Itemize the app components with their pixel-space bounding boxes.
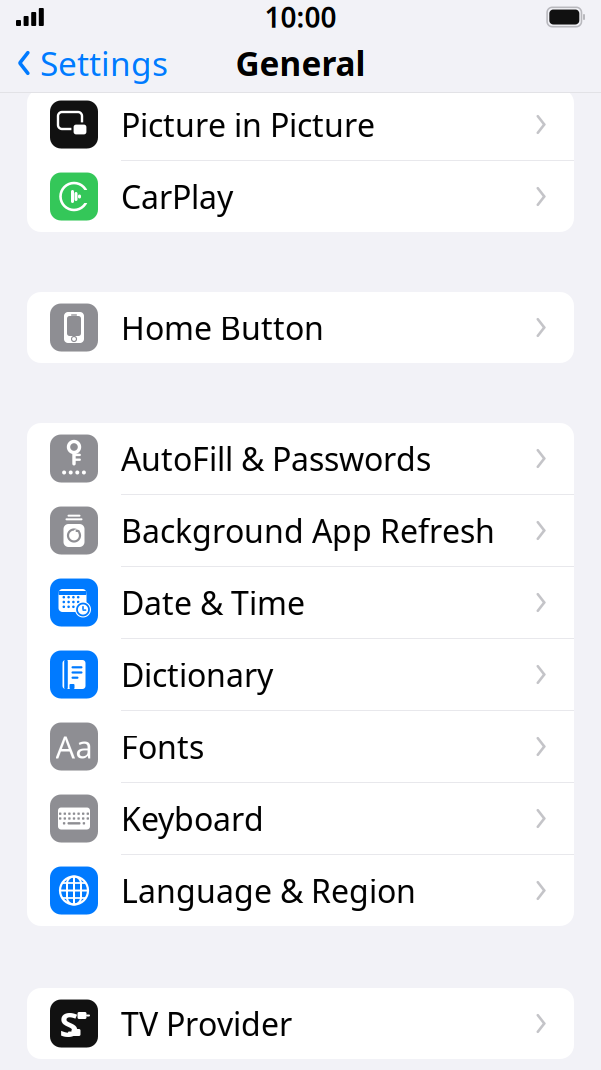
staticText: AutoFill & Passwords: [121, 437, 431, 480]
staticText: Dictionary: [121, 653, 273, 696]
staticText: Fonts: [121, 725, 204, 768]
button[interactable]: AutoFill & Passwords: [27, 423, 574, 495]
button[interactable]: Picture in Picture: [27, 89, 574, 161]
staticText: Language & Region: [121, 869, 416, 912]
staticText: Home Button: [121, 306, 324, 349]
button[interactable]: Keyboard: [27, 783, 574, 855]
staticText: Settings: [40, 41, 168, 85]
staticText: General: [235, 41, 365, 85]
button[interactable]: Dictionary: [27, 639, 574, 711]
staticText: CarPlay: [121, 175, 233, 218]
button[interactable]: S: [27, 988, 574, 1059]
staticText: Background App Refresh: [121, 509, 495, 552]
staticText: Keyboard: [121, 797, 264, 840]
staticText: Picture in Picture: [121, 103, 375, 146]
button[interactable]: Language & Region: [27, 855, 574, 926]
button[interactable]: Background App Refresh: [27, 495, 574, 567]
button[interactable]: Settings: [0, 35, 168, 91]
button[interactable]: Home Button: [27, 292, 574, 363]
button[interactable]: Aa: [27, 711, 574, 783]
staticText: Date & Time: [121, 581, 305, 624]
staticText: Aa: [55, 726, 92, 767]
button[interactable]: Date & Time: [27, 567, 574, 639]
staticText: 10:00: [264, 0, 336, 36]
staticText: TV Provider: [121, 1002, 292, 1045]
button[interactable]: CarPlay: [27, 161, 574, 232]
staticText: S: [59, 1000, 78, 1046]
